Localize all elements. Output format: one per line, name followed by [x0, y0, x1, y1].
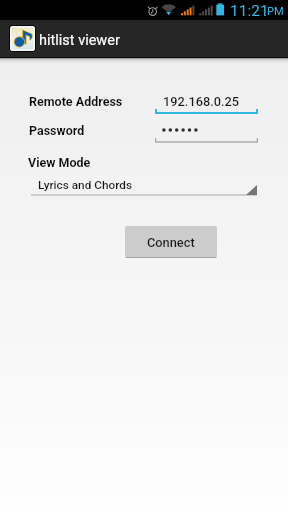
staticText: hitlist viewer [39, 32, 120, 49]
button[interactable]: Connect [125, 226, 217, 258]
staticText: 192.168.0.25 [163, 94, 240, 109]
staticText: PM [267, 5, 284, 18]
staticText: Password [29, 123, 85, 138]
button[interactable]: hitlist viewer, home [0, 20, 120, 57]
staticText: Lyrics and Chords [38, 178, 132, 192]
staticText: 11:21 [230, 2, 269, 20]
button[interactable]: 192.168.0.25 [155, 92, 258, 114]
staticText: Remote Address [29, 94, 123, 109]
button[interactable]: Lyrics and Chords [31, 177, 257, 196]
staticText: View Mode [28, 155, 91, 170]
button[interactable] [155, 124, 258, 143]
staticText: Connect [147, 235, 195, 250]
